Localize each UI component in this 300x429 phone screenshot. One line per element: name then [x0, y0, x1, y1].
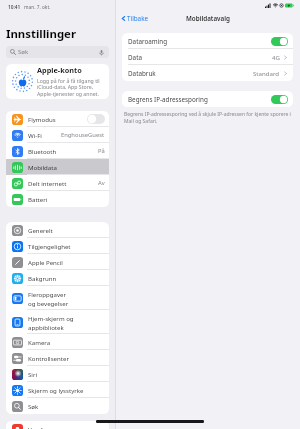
button[interactable]: Mobildata	[6, 159, 109, 175]
button[interactable]: Bakgrunn	[6, 270, 109, 286]
staticText: Apple-konto	[37, 65, 82, 75]
staticText: Mobildata	[28, 163, 57, 171]
button[interactable]: Batteri	[6, 191, 109, 207]
staticText: Av	[98, 179, 105, 187]
button[interactable]: Bluetooth	[6, 143, 109, 159]
button[interactable]: Varslinger	[6, 421, 109, 429]
button[interactable]: Generelt	[6, 222, 109, 238]
button[interactable]: Begrens IP-adressesporing	[122, 91, 293, 107]
button[interactable]: Søk	[6, 398, 109, 414]
button[interactable]: Skjerm og lysstyrke	[6, 382, 109, 398]
staticText: Wi-Fi	[28, 131, 42, 139]
staticText: Begrens IP-adressesporing	[128, 95, 208, 104]
staticText: Dataroaming	[128, 37, 168, 46]
staticText: EnghouseGuest	[61, 131, 105, 139]
button[interactable]: Apple-konto	[6, 64, 109, 99]
button[interactable]: Databruk	[122, 65, 293, 81]
staticText: 10:41	[8, 4, 21, 11]
staticText: Skjerm og lysstyrke	[28, 386, 84, 394]
staticText: Tilbake	[127, 14, 149, 23]
button[interactable]: Søk	[6, 46, 109, 58]
staticText: Apple Pencil	[28, 258, 63, 266]
staticText: Delt internett	[28, 179, 67, 187]
button[interactable]: Apple Pencil	[6, 254, 109, 270]
button[interactable]: Flymodus	[6, 111, 109, 127]
button[interactable]: Data	[122, 49, 293, 65]
staticText: Siri	[28, 370, 38, 378]
staticText: Kamera	[28, 338, 51, 346]
button[interactable]: Kontrollsenter	[6, 350, 109, 366]
button[interactable]: Wi-Fi	[6, 127, 109, 143]
staticText: 4G	[272, 53, 280, 61]
staticText: Tilgjengelighet	[28, 242, 71, 250]
staticText: På	[98, 147, 105, 155]
staticText: Begrens IP-adressesporing ved å skjule I…	[124, 111, 292, 125]
staticText: og bevegelser	[28, 299, 69, 307]
staticText: appbibliotek	[28, 323, 64, 331]
button[interactable]: Fleroppgaver	[6, 286, 109, 310]
staticText: Data	[128, 53, 142, 62]
staticText: Fleroppgaver	[28, 290, 66, 298]
staticText: Søk	[28, 402, 39, 410]
staticText: Varslinger	[28, 425, 57, 429]
button[interactable]: Tilgjengelighet	[6, 238, 109, 254]
button[interactable]: Siri	[6, 366, 109, 382]
staticText: Mobildatavalg	[186, 14, 230, 23]
staticText: Generelt	[28, 226, 53, 234]
staticText: Bluetooth	[28, 147, 57, 155]
staticText: Kontrollsenter	[28, 354, 69, 362]
staticText: man. 7. okt.	[24, 4, 51, 11]
staticText: Flymodus	[28, 115, 56, 123]
staticText: Hjem-skjerm og	[28, 314, 74, 322]
staticText: Standard	[253, 69, 280, 77]
staticText: Innstillinger	[6, 26, 76, 42]
staticText: Logg på for å få tilgang til iCloud-data…	[37, 77, 105, 98]
button[interactable]: Dataroaming	[122, 33, 293, 49]
staticText: Søk	[18, 48, 29, 56]
button[interactable]: Tilbake	[119, 12, 151, 25]
staticText: Batteri	[28, 195, 48, 203]
button[interactable]: Delt internett	[6, 175, 109, 191]
button[interactable]: Kamera	[6, 334, 109, 350]
staticText: Databruk	[128, 69, 156, 78]
button[interactable]: Hjem-skjerm og	[6, 310, 109, 334]
staticText: Bakgrunn	[28, 274, 57, 282]
